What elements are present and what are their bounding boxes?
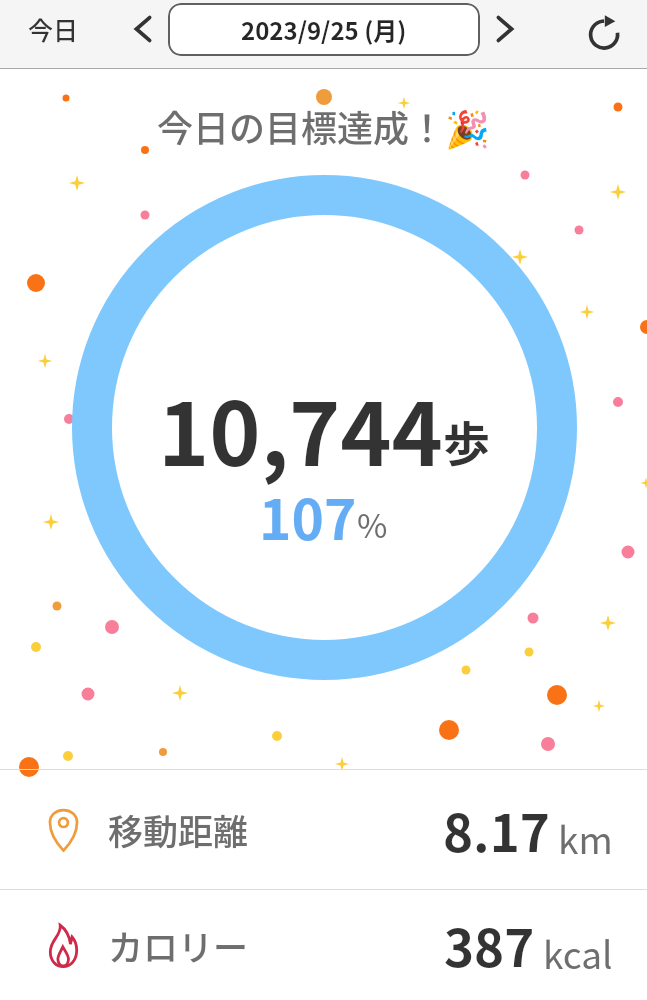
staticText: 10,744 [158,365,443,491]
staticText: 387 [444,908,535,982]
staticText: 107 [259,476,357,556]
button[interactable]: 今日 [10,0,97,59]
staticText: 移動距離 [108,804,249,855]
staticText: kcal [543,926,613,980]
button[interactable]: 2023/9/25 (月) [168,3,480,56]
staticText: 歩 [443,406,490,474]
button[interactable]: カロリー [0,890,647,1000]
button[interactable]: Refresh [580,7,630,57]
staticText: 今日の目標達成！🎉 [157,100,490,152]
button[interactable]: 移動距離 [0,770,647,889]
staticText: 8.17 [443,793,550,867]
staticText: 2023/9/25 (月) [241,12,407,47]
staticText: km [558,811,613,865]
staticText: % [357,500,388,548]
button[interactable]: Previous day [118,4,168,54]
staticText: カロリー [108,920,249,971]
button[interactable]: Next day [480,4,530,54]
staticText: 今日 [28,11,79,47]
